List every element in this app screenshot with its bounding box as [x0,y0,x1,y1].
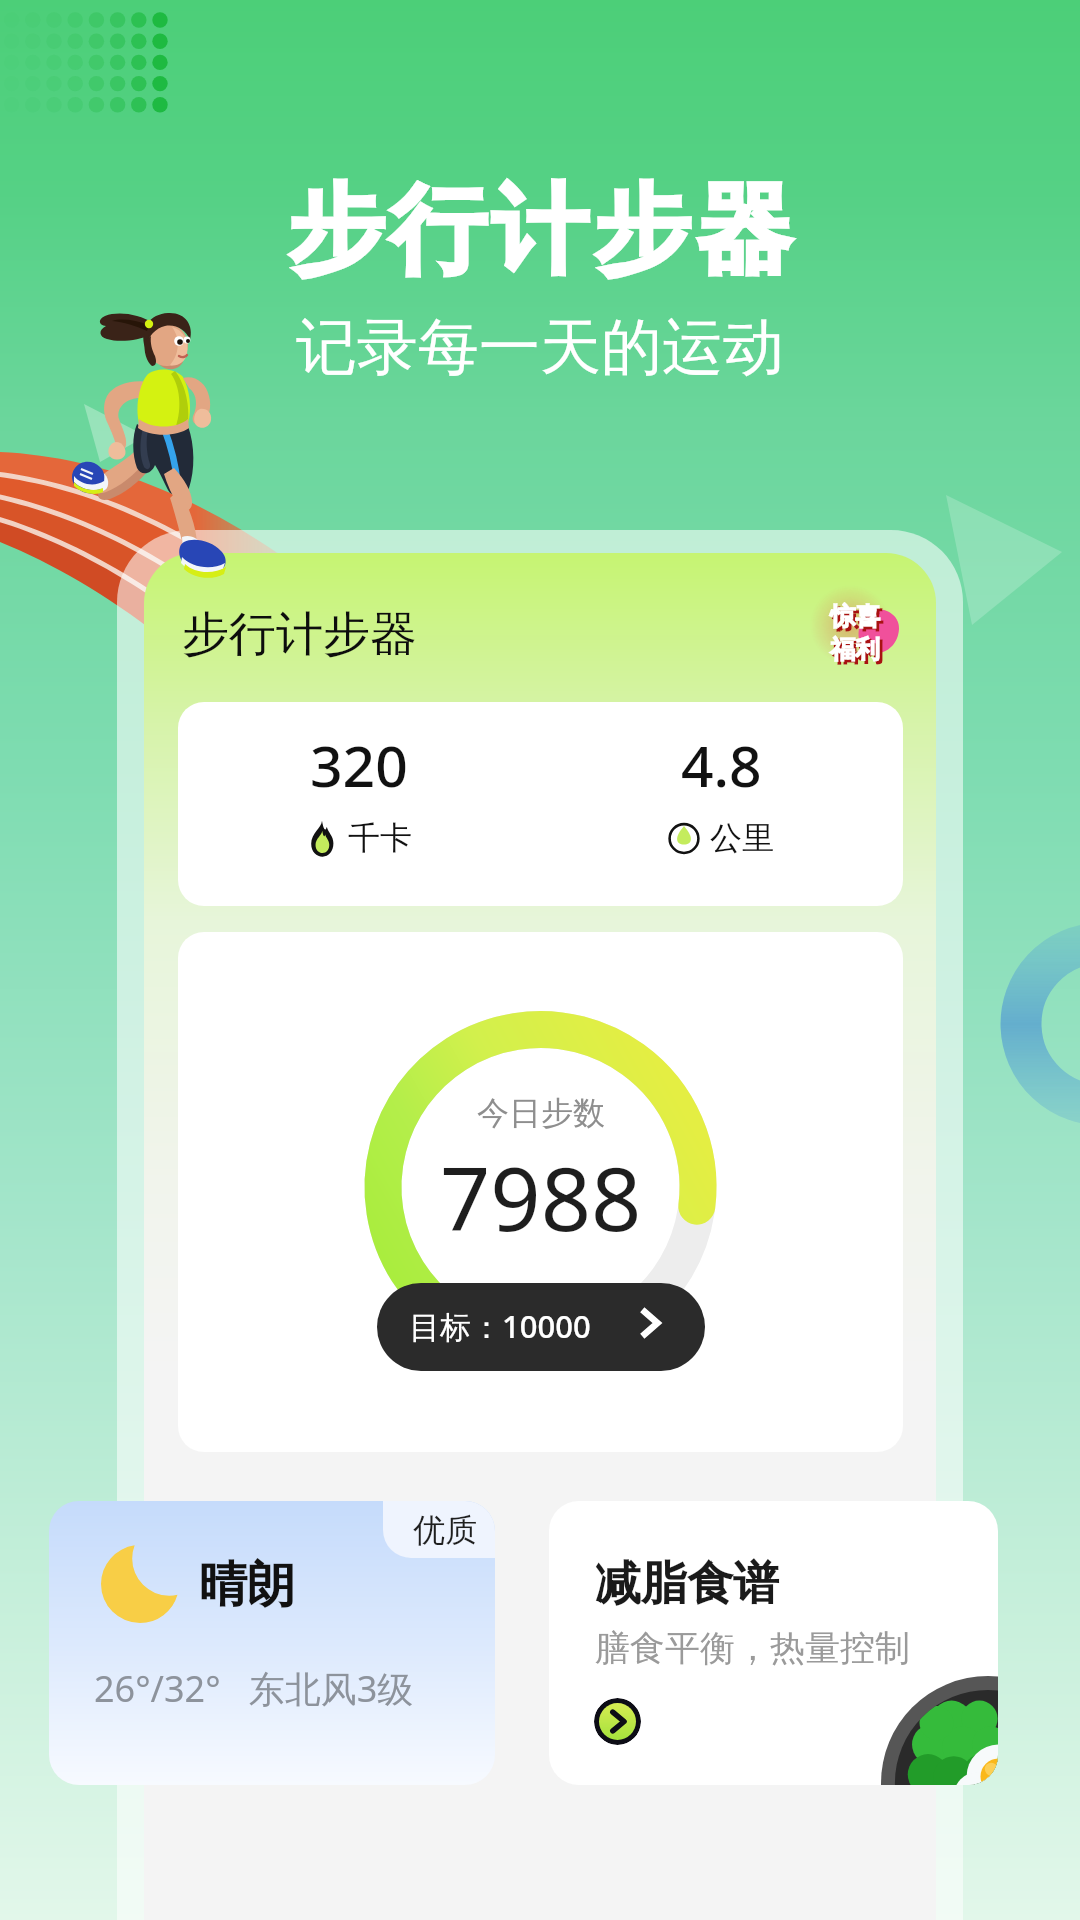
staticText: 320 [310,726,408,804]
staticText: 7988 [440,1137,642,1257]
staticText: 惊喜 [830,601,880,632]
staticText: 4.8 [681,726,762,804]
button[interactable]: 惊喜福利 [816,591,912,667]
button[interactable]: 减脂食谱 [549,1501,998,1785]
staticText: 记录每一天的运动 [296,309,784,386]
staticText: 福利 [830,634,880,665]
staticText: 26°/32° 东北风3级 [94,1664,414,1713]
staticText: 惊喜 [833,604,883,635]
staticText: 福利 [833,637,883,668]
staticText: 减脂食谱 [595,1555,779,1613]
staticText: 千卡 [348,818,412,858]
staticText: 膳食平衡，热量控制 [595,1626,910,1670]
button[interactable]: 优质 [49,1501,495,1785]
button[interactable]: 目标：10000 [377,1283,705,1371]
staticText: 晴朗 [199,1555,295,1615]
staticText: 公里 [710,818,774,858]
button[interactable]: 查看减脂食谱 [594,1698,641,1745]
staticText: 目标：10000 [409,1305,591,1347]
staticText: 步行计步器 [285,171,795,292]
staticText: 今日步数 [477,1093,605,1133]
staticText: 优质 [413,1510,477,1550]
button[interactable]: 320 [178,702,903,906]
staticText: 步行计步器 [182,605,417,664]
